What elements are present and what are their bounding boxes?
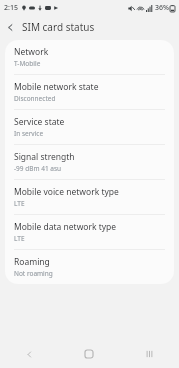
staticText: In service xyxy=(14,129,44,138)
staticText: 2:15 xyxy=(4,3,18,13)
staticText: Mobile data network type xyxy=(14,221,117,233)
button[interactable]: Service state xyxy=(5,110,174,144)
button[interactable]: Roaming xyxy=(5,250,174,284)
staticText: SIM card status xyxy=(22,20,95,34)
button[interactable]: Navigate up xyxy=(0,17,20,37)
button[interactable]: Signal strength xyxy=(5,145,174,179)
button[interactable]: Mobile network state xyxy=(5,75,174,109)
staticText: LTE xyxy=(14,234,25,243)
button[interactable]: Network xyxy=(5,40,174,74)
button[interactable]: Recent apps xyxy=(119,340,179,368)
staticText: Network xyxy=(14,46,49,58)
button[interactable]: Mobile data network type xyxy=(5,215,174,249)
staticText: Not roaming xyxy=(14,269,53,278)
staticText: LTE xyxy=(14,199,25,208)
staticText: Signal strength xyxy=(14,151,75,163)
staticText: Mobile network state xyxy=(14,81,99,93)
staticText: Mobile voice network type xyxy=(14,186,119,198)
staticText: Roaming xyxy=(14,256,50,268)
staticText: -99 dBm 41 asu xyxy=(14,164,62,173)
staticText: 36% xyxy=(155,3,169,13)
button[interactable]: Mobile voice network type xyxy=(5,180,174,214)
staticText: Service state xyxy=(14,116,65,128)
staticText: Disconnected xyxy=(14,94,56,103)
staticText: T-Mobile xyxy=(14,59,41,68)
button[interactable]: Home xyxy=(59,340,119,368)
